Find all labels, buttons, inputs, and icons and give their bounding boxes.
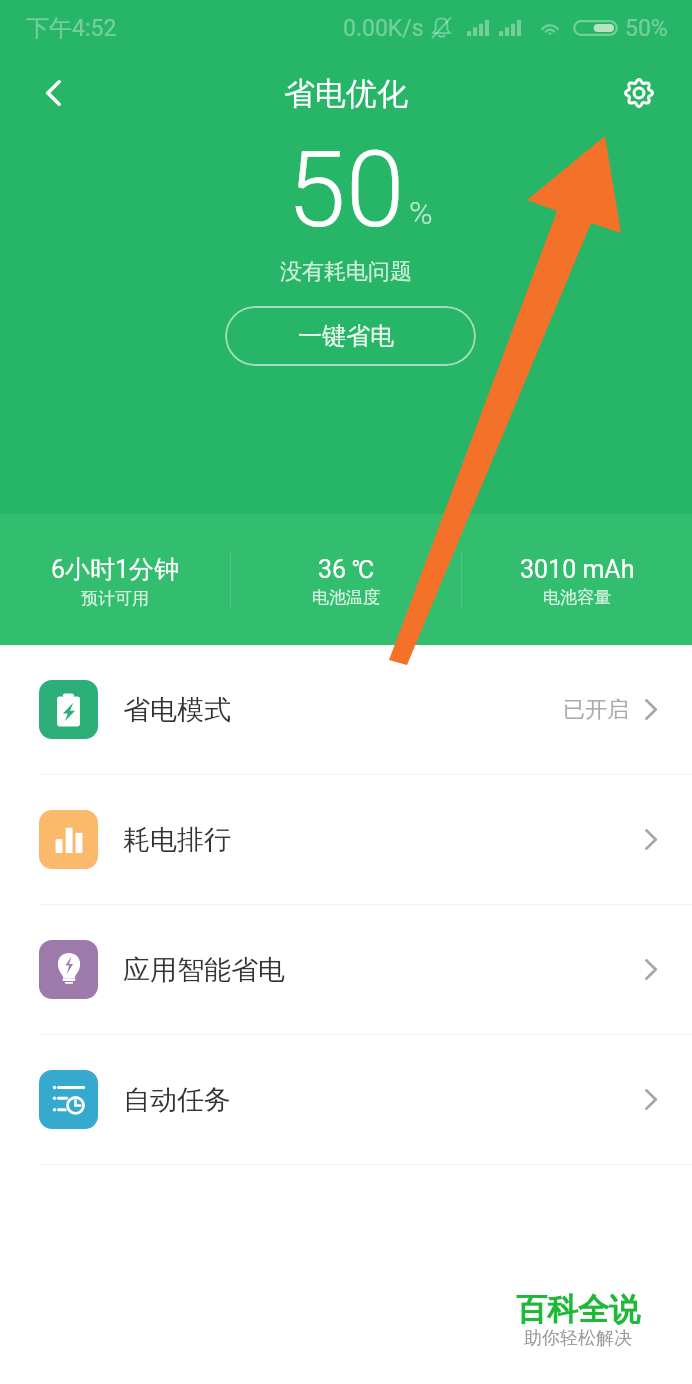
staticText: 省电模式 xyxy=(123,693,231,727)
staticText: 50% xyxy=(625,15,668,42)
staticText: 没有耗电问题 xyxy=(280,258,412,286)
button[interactable]: 应用智能省电 xyxy=(0,905,692,1034)
staticText: 0.00K/s xyxy=(343,15,424,42)
button[interactable]: Settings xyxy=(610,64,668,122)
staticText: 3010 mAh xyxy=(520,555,635,584)
staticText: 36 ℃ xyxy=(318,555,375,584)
staticText: 预计可用 xyxy=(81,588,149,609)
staticText: 电池容量 xyxy=(543,587,611,608)
staticText: 电池温度 xyxy=(312,587,380,608)
staticText: 耗电排行 xyxy=(123,823,231,857)
staticText: 助你轻松解决 xyxy=(524,1327,632,1350)
staticText: 一键省电 xyxy=(298,321,394,351)
button[interactable]: 一键省电 xyxy=(225,306,476,366)
button[interactable]: 自动任务 xyxy=(0,1035,692,1164)
button[interactable]: 省电模式 xyxy=(0,645,692,774)
staticText: 应用智能省电 xyxy=(123,953,285,987)
staticText: % xyxy=(409,194,433,232)
button[interactable]: Back xyxy=(24,64,82,122)
staticText: 下午4:52 xyxy=(26,14,117,43)
staticText: 百科全说 xyxy=(516,1290,640,1329)
staticText: 省电优化 xyxy=(284,74,408,113)
button[interactable]: 耗电排行 xyxy=(0,775,692,904)
staticText: 自动任务 xyxy=(123,1083,231,1117)
staticText: 6小时1分钟 xyxy=(51,554,180,585)
staticText: 已开启 xyxy=(563,696,629,724)
staticText: 50 xyxy=(287,128,405,252)
